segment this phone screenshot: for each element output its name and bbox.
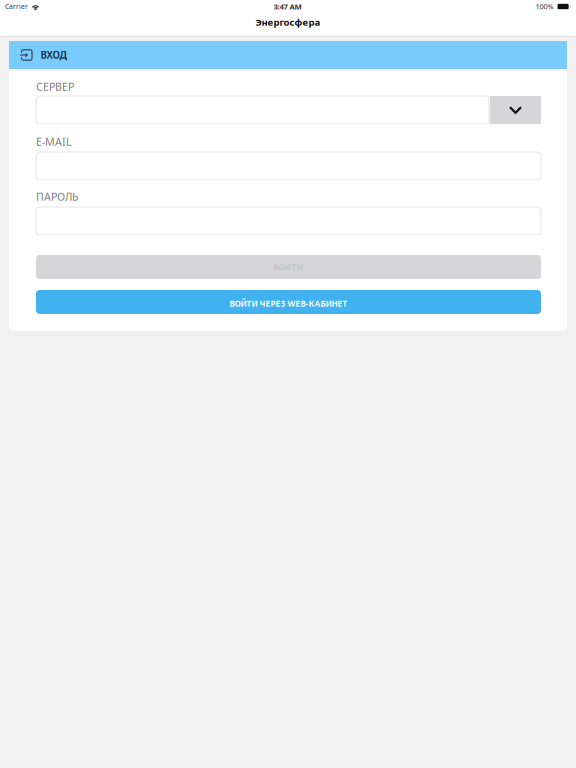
staticText: ВОЙТИ [273,261,303,273]
staticText: E-MAIL [36,134,72,149]
button[interactable]: ВХОД [9,41,567,69]
button[interactable]: ВОЙТИ ЧЕРЕЗ WEB-КАБИНЕТ [36,290,541,314]
staticText: 3:47 AM [274,1,302,12]
staticText: Энергосфера [255,15,320,28]
staticText: ВХОД [41,48,68,62]
staticText: 100% [536,1,554,11]
button[interactable]: Выбрать сервер [490,96,541,124]
staticText: ПАРОЛЬ [36,189,78,204]
staticText: Carrier [5,2,28,11]
staticText: СЕРВЕР [36,79,74,94]
staticText: ВОЙТИ ЧЕРЕЗ WEB-КАБИНЕТ [229,298,347,309]
